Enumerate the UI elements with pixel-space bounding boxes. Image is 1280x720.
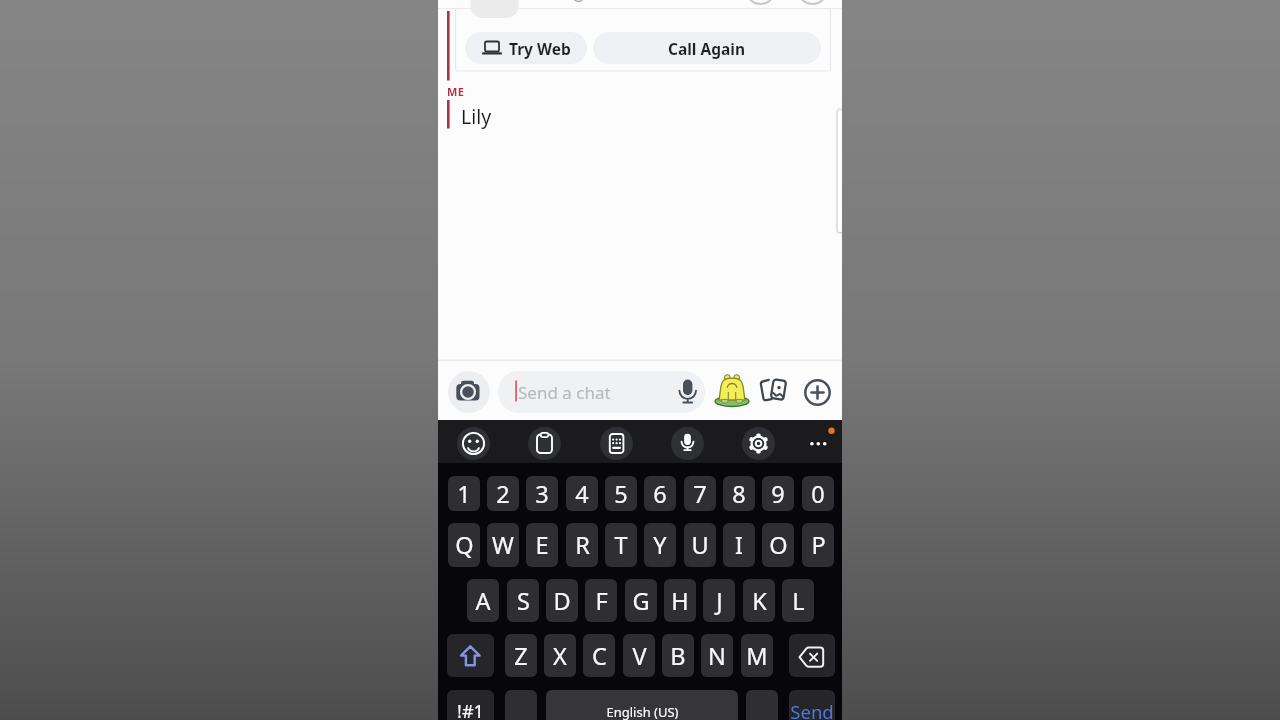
staticText: B bbox=[670, 640, 686, 672]
staticText: H bbox=[671, 585, 689, 617]
button[interactable] bbox=[600, 427, 633, 460]
button[interactable]: Y bbox=[644, 523, 676, 567]
staticText: E bbox=[535, 529, 549, 561]
button[interactable] bbox=[528, 427, 561, 460]
button[interactable] bbox=[671, 427, 704, 460]
button[interactable] bbox=[447, 634, 494, 677]
staticText: M bbox=[746, 640, 768, 672]
staticText: Try Web bbox=[509, 38, 571, 59]
staticText: D bbox=[553, 585, 571, 617]
staticText: L bbox=[792, 585, 805, 617]
button[interactable]: English (US) bbox=[546, 690, 738, 720]
button[interactable]: H bbox=[664, 579, 696, 622]
staticText: Y bbox=[653, 529, 667, 561]
button[interactable]: L bbox=[782, 579, 814, 622]
button[interactable]: W bbox=[487, 523, 519, 567]
button[interactable]: X bbox=[544, 634, 576, 677]
button[interactable] bbox=[448, 371, 490, 413]
staticText: J bbox=[716, 585, 723, 617]
button[interactable]: S bbox=[507, 579, 539, 622]
staticText: X bbox=[553, 640, 567, 672]
button[interactable]: B bbox=[662, 634, 694, 677]
button[interactable]: T bbox=[605, 523, 637, 567]
button[interactable]: Z bbox=[505, 634, 537, 677]
staticText: Send bbox=[790, 699, 834, 720]
staticText: T bbox=[614, 529, 628, 561]
button[interactable]: 5 bbox=[605, 476, 637, 511]
staticText: N bbox=[708, 640, 726, 672]
button[interactable]: 7 bbox=[684, 476, 716, 511]
button[interactable] bbox=[505, 690, 537, 720]
button[interactable]: M bbox=[741, 634, 773, 677]
staticText: C bbox=[592, 640, 607, 672]
button[interactable]: K bbox=[743, 579, 775, 622]
staticText: 2 bbox=[496, 478, 510, 510]
button[interactable]: 3 bbox=[526, 476, 558, 511]
staticText: I bbox=[735, 529, 743, 561]
button[interactable] bbox=[803, 378, 832, 407]
button[interactable]: N bbox=[701, 634, 733, 677]
staticText: G bbox=[632, 585, 650, 617]
button[interactable] bbox=[457, 427, 490, 460]
staticText: !#1 bbox=[457, 699, 484, 720]
button[interactable]: Call Again bbox=[593, 32, 821, 64]
staticText: A bbox=[475, 585, 491, 617]
staticText: F bbox=[595, 585, 608, 617]
button[interactable]: 0 bbox=[802, 476, 834, 511]
button[interactable]: V bbox=[623, 634, 655, 677]
button[interactable]: 1 bbox=[448, 476, 480, 511]
staticText: U bbox=[691, 529, 709, 561]
button[interactable] bbox=[800, 427, 840, 460]
button[interactable]: A bbox=[467, 579, 499, 622]
staticText: 1 bbox=[457, 478, 471, 510]
staticText: Send a chat bbox=[518, 381, 611, 404]
staticText: V bbox=[632, 640, 647, 672]
staticText: Q bbox=[455, 529, 474, 561]
staticText: Lily bbox=[461, 103, 492, 130]
button[interactable]: 6 bbox=[644, 476, 676, 511]
button[interactable]: J bbox=[703, 579, 735, 622]
button[interactable]: G bbox=[625, 579, 657, 622]
staticText: W bbox=[492, 529, 514, 561]
staticText: 6 bbox=[653, 478, 667, 510]
button[interactable]: E bbox=[526, 523, 558, 567]
staticText: 8 bbox=[732, 478, 746, 510]
staticText: 3 bbox=[535, 478, 549, 510]
button[interactable]: Try Web bbox=[465, 32, 587, 64]
button[interactable]: !#1 bbox=[447, 690, 494, 720]
button[interactable] bbox=[742, 427, 775, 460]
staticText: 0 bbox=[811, 478, 825, 510]
staticText: 4 bbox=[575, 478, 589, 510]
button[interactable]: 8 bbox=[723, 476, 755, 511]
button[interactable] bbox=[711, 371, 754, 409]
button[interactable]: R bbox=[566, 523, 598, 567]
button[interactable]: 9 bbox=[762, 476, 794, 511]
staticText: 5 bbox=[614, 478, 628, 510]
button[interactable]: C bbox=[583, 634, 615, 677]
staticText: 9 bbox=[771, 478, 785, 510]
button[interactable] bbox=[758, 376, 790, 406]
button[interactable]: U bbox=[684, 523, 716, 567]
staticText: P bbox=[811, 529, 826, 561]
staticText: 7 bbox=[693, 478, 707, 510]
staticText: ME bbox=[447, 84, 465, 99]
staticText: English (US) bbox=[606, 703, 679, 720]
staticText: R bbox=[575, 529, 590, 561]
staticText: Z bbox=[514, 640, 528, 672]
button[interactable]: Q bbox=[448, 523, 480, 567]
button[interactable] bbox=[789, 634, 835, 677]
button[interactable]: Send a chat bbox=[498, 371, 705, 413]
button[interactable]: 4 bbox=[566, 476, 598, 511]
button[interactable]: I bbox=[723, 523, 755, 567]
button[interactable]: O bbox=[762, 523, 794, 567]
button[interactable]: F bbox=[585, 579, 617, 622]
button[interactable]: 2 bbox=[487, 476, 519, 511]
staticText: K bbox=[752, 585, 767, 617]
button[interactable]: Send bbox=[789, 690, 835, 720]
staticText: O bbox=[769, 529, 788, 561]
staticText: S bbox=[517, 585, 530, 617]
button[interactable]: P bbox=[802, 523, 834, 567]
button[interactable] bbox=[746, 690, 778, 720]
staticText: Call Again bbox=[668, 38, 746, 59]
button[interactable]: D bbox=[546, 579, 578, 622]
